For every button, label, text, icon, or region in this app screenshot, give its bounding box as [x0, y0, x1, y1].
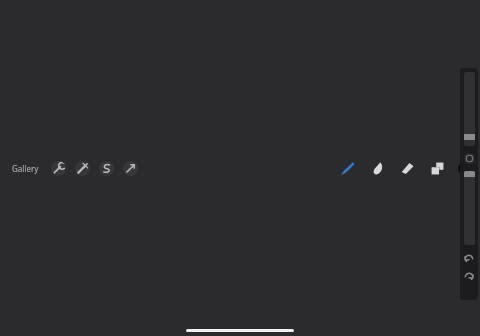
button[interactable]: Modify [464, 153, 475, 164]
button[interactable]: Transform [123, 161, 138, 176]
button[interactable]: Redo [463, 271, 475, 284]
button[interactable]: Opacity [464, 171, 475, 245]
button[interactable]: Color [454, 158, 474, 178]
button[interactable]: Brush size [464, 72, 475, 146]
button[interactable]: Paint [336, 158, 358, 178]
button[interactable]: Actions [51, 161, 66, 176]
button[interactable]: Adjustments [75, 161, 90, 176]
staticText: Gallery [12, 163, 39, 174]
button[interactable]: Smudge [366, 158, 388, 178]
button[interactable]: Layers [426, 158, 448, 178]
button[interactable]: Selection [99, 161, 114, 176]
button[interactable]: Gallery [9, 161, 42, 176]
button[interactable]: Erase [396, 158, 418, 178]
button[interactable]: Undo [463, 253, 475, 266]
